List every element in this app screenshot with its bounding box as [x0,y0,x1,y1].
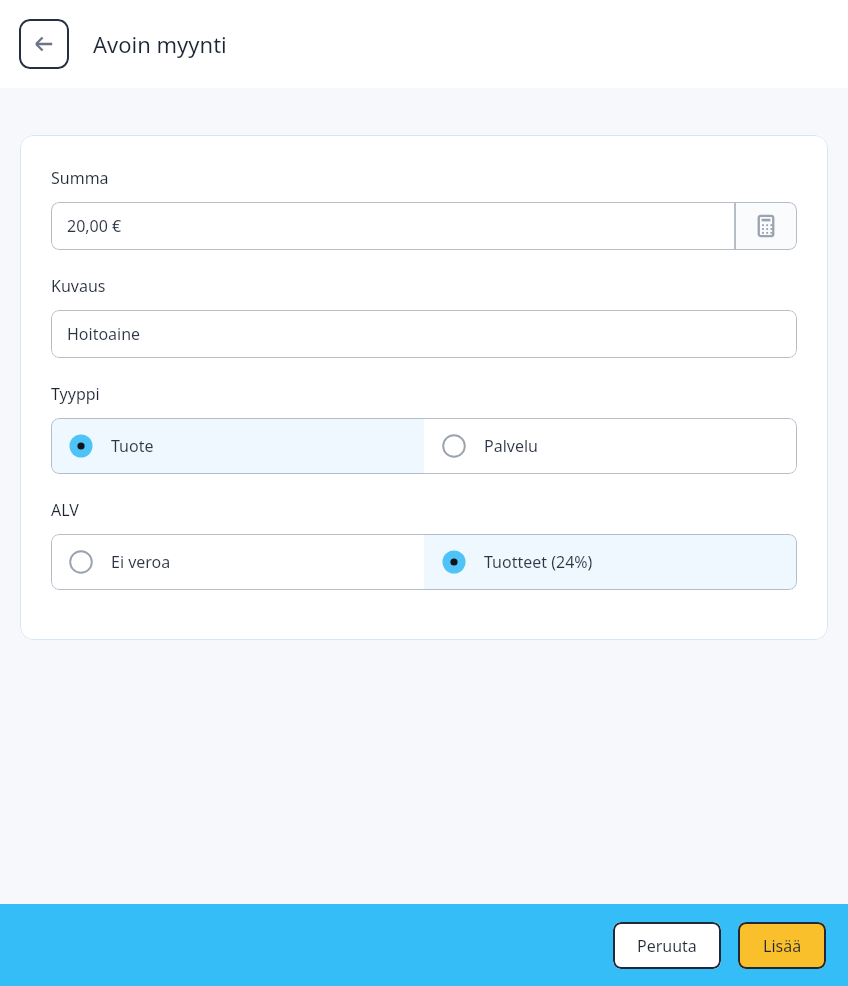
staticText: Lisää [763,935,802,957]
staticText: Tuote [111,435,154,457]
staticText: Tyyppi [51,383,100,405]
staticText: Ei veroa [111,551,171,573]
button[interactable]: Back [19,19,69,69]
button[interactable]: Calculator [735,202,797,250]
button[interactable]: 20,00 € [51,202,735,250]
staticText: Hoitoaine [67,323,141,345]
button[interactable]: Peruuta [613,922,721,969]
staticText: Summa [51,167,109,189]
button[interactable]: Tuote [51,418,424,474]
button[interactable]: Tuotteet (24%) [424,534,797,590]
staticText: 20,00 € [67,215,122,237]
staticText: Avoin myynti [93,29,227,59]
button[interactable]: Hoitoaine [51,310,797,358]
staticText: ALV [51,499,79,521]
button[interactable]: Ei veroa [51,534,424,590]
staticText: Palvelu [484,435,538,457]
staticText: Peruuta [637,935,697,957]
button[interactable]: Palvelu [424,418,797,474]
staticText: Kuvaus [51,275,106,297]
button[interactable]: Lisää [738,922,826,969]
staticText: Tuotteet (24%) [484,551,593,573]
